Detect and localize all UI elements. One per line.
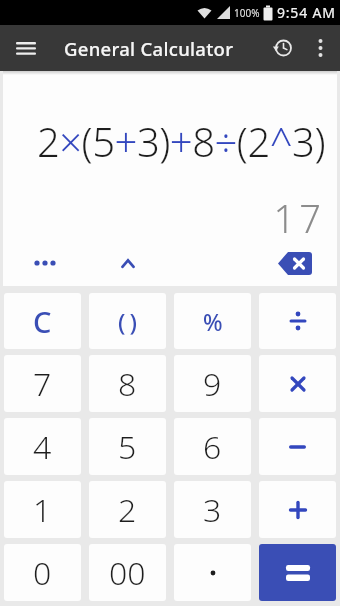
button[interactable] [264,25,302,71]
staticText: 17 [3,192,325,244]
button[interactable]: C [4,293,81,349]
staticText: 8 [118,362,137,406]
staticText: % [203,306,223,337]
button[interactable]: % [174,293,251,349]
button[interactable] [302,25,338,71]
button[interactable] [174,544,251,601]
button[interactable]: ( ) [89,293,166,349]
button[interactable] [259,355,336,412]
staticText: 00 [109,551,146,595]
staticText: 5 [118,425,137,469]
button[interactable]: 3 [174,481,251,538]
button[interactable] [259,544,336,601]
button[interactable] [259,293,336,349]
button[interactable] [253,244,337,282]
button[interactable]: 6 [174,418,251,475]
button[interactable]: 2 [89,481,166,538]
staticText: 2 [118,488,137,532]
button[interactable] [3,244,86,282]
staticText: 100% [234,6,260,20]
button[interactable] [259,418,336,475]
staticText: ( ) [118,305,137,338]
button[interactable] [259,481,336,538]
button[interactable]: 8 [89,355,166,412]
button[interactable]: 5 [89,418,166,475]
button[interactable]: 4 [4,418,81,475]
button[interactable]: 0 [4,544,81,601]
staticText: 0 [33,551,52,595]
button[interactable]: 1 [4,481,81,538]
staticText: General Calculator [64,36,234,61]
button[interactable] [0,25,52,71]
staticText: 1 [33,488,52,532]
staticText: 2×(5+3)+8÷(2^3) [3,114,325,168]
staticText: 4 [33,425,52,469]
staticText: 7 [33,362,52,406]
staticText: C [33,302,52,341]
button[interactable]: 7 [4,355,81,412]
staticText: 6 [203,425,222,469]
staticText: 9 [203,362,222,406]
button[interactable]: 9 [174,355,251,412]
staticText: 9:54 AM [277,3,336,22]
button[interactable] [86,244,169,282]
button[interactable]: 00 [89,544,166,601]
staticText: 3 [203,488,222,532]
